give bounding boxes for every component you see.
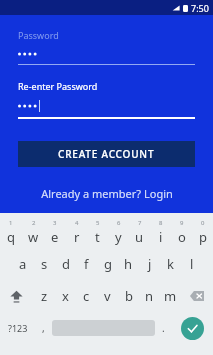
staticText: 0 <box>201 219 205 227</box>
staticText: h <box>124 255 133 273</box>
button[interactable]: 2 <box>22 216 44 248</box>
staticText: a <box>19 255 27 273</box>
staticText: q <box>7 228 15 246</box>
staticText: c <box>83 287 90 305</box>
staticText: p <box>199 228 207 246</box>
staticText: , <box>42 321 45 335</box>
staticText: y <box>115 228 122 246</box>
staticText: u <box>135 228 144 246</box>
button[interactable]: z <box>33 280 55 312</box>
staticText: z <box>41 287 48 305</box>
button[interactable]: 8 <box>150 216 171 248</box>
button[interactable]: k <box>160 248 181 280</box>
staticText: 7 <box>138 219 142 227</box>
staticText: f <box>84 255 89 273</box>
button[interactable]: 6 <box>108 216 129 248</box>
staticText: 5 <box>96 219 100 227</box>
staticText: CREATE ACCOUNT <box>58 147 155 161</box>
staticText: g <box>104 255 112 273</box>
button[interactable]: CREATE ACCOUNT <box>18 141 195 167</box>
button[interactable]: ?123 <box>0 312 35 344</box>
button[interactable]: 9 <box>171 216 192 248</box>
staticText: i <box>159 228 163 246</box>
button[interactable]: Already a member? Login <box>18 183 195 203</box>
staticText: 3 <box>53 219 57 227</box>
staticText: 6 <box>117 219 121 227</box>
staticText: t <box>95 228 100 246</box>
staticText: 9 <box>180 219 184 227</box>
staticText: 1 <box>9 219 13 227</box>
staticText: o <box>178 228 186 246</box>
staticText: k <box>167 255 174 273</box>
staticText: Re-enter Password <box>18 80 98 92</box>
staticText: x <box>62 287 69 305</box>
button[interactable]: a <box>12 248 34 280</box>
staticText: 7:50 <box>191 2 209 14</box>
staticText: d <box>62 255 70 273</box>
staticText: Password <box>18 29 59 41</box>
button[interactable]: f <box>76 248 97 280</box>
button[interactable]: m <box>160 280 181 312</box>
button[interactable]: d <box>55 248 76 280</box>
button[interactable]: 4 <box>66 216 87 248</box>
staticText: ?123 <box>8 322 28 334</box>
staticText: w <box>28 228 39 246</box>
button[interactable]: b <box>118 280 139 312</box>
staticText: v <box>104 287 111 305</box>
staticText: 4 <box>75 219 79 227</box>
button[interactable]: j <box>139 248 160 280</box>
button[interactable]: 0 <box>192 216 213 248</box>
staticText: m <box>164 287 177 305</box>
staticText: s <box>41 255 48 273</box>
staticText: b <box>125 287 133 305</box>
staticText: n <box>145 287 154 305</box>
staticText: Already a member? Login <box>41 186 173 201</box>
button[interactable]: h <box>118 248 139 280</box>
button[interactable]: n <box>139 280 160 312</box>
button[interactable]: 3 <box>44 216 66 248</box>
button[interactable]: c <box>76 280 97 312</box>
button[interactable]: Shift <box>0 280 33 312</box>
button[interactable]: . <box>155 312 172 344</box>
button[interactable]: l <box>181 248 202 280</box>
staticText: r <box>74 228 80 246</box>
button[interactable]: Enter <box>172 312 213 344</box>
staticText: 8 <box>159 219 163 227</box>
button[interactable]: , <box>35 312 52 344</box>
button[interactable]: 5 <box>87 216 108 248</box>
button[interactable]: v <box>97 280 118 312</box>
staticText: j <box>148 255 152 273</box>
staticText: e <box>51 228 59 246</box>
staticText: l <box>190 255 194 273</box>
staticText: . <box>162 321 165 335</box>
staticText: 2 <box>32 219 36 227</box>
button[interactable]: Backspace <box>181 280 213 312</box>
button[interactable]: 7 <box>129 216 150 248</box>
button[interactable]: 1 <box>0 216 22 248</box>
button[interactable]: s <box>34 248 55 280</box>
button[interactable]: g <box>97 248 118 280</box>
button[interactable]: x <box>55 280 76 312</box>
